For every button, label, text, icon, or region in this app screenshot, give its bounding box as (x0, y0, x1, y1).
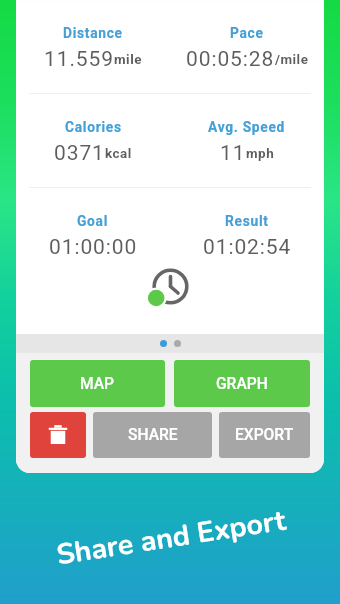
staticText: Pace (230, 25, 264, 41)
staticText: 11.559 (44, 47, 114, 72)
staticText: 01:02:54 (203, 235, 292, 260)
staticText: GRAPH (216, 375, 268, 393)
staticText: Distance (63, 25, 123, 41)
staticText: Goal (77, 213, 109, 229)
staticText: SHARE (128, 426, 178, 444)
staticText: /mile (275, 52, 309, 68)
staticText: EXPORT (235, 426, 294, 444)
staticText: mph (246, 146, 275, 162)
staticText: mile (114, 52, 142, 68)
staticText: Avg. Speed (208, 119, 286, 135)
button[interactable]: GRAPH (174, 360, 310, 407)
button[interactable]: Delete (30, 412, 86, 458)
staticText: 0371 (54, 141, 105, 166)
staticText: 00:05:28 (186, 47, 275, 72)
button[interactable]: EXPORT (219, 412, 310, 458)
staticText: Share and Export (53, 500, 289, 574)
button[interactable]: SHARE (93, 412, 212, 458)
staticText: kcal (105, 146, 132, 162)
button[interactable]: MAP (30, 360, 165, 407)
staticText: 11 (220, 141, 246, 166)
staticText: Calories (65, 119, 122, 135)
staticText: 01:00:00 (49, 235, 138, 260)
staticText: MAP (80, 375, 115, 393)
staticText: Result (225, 213, 269, 229)
